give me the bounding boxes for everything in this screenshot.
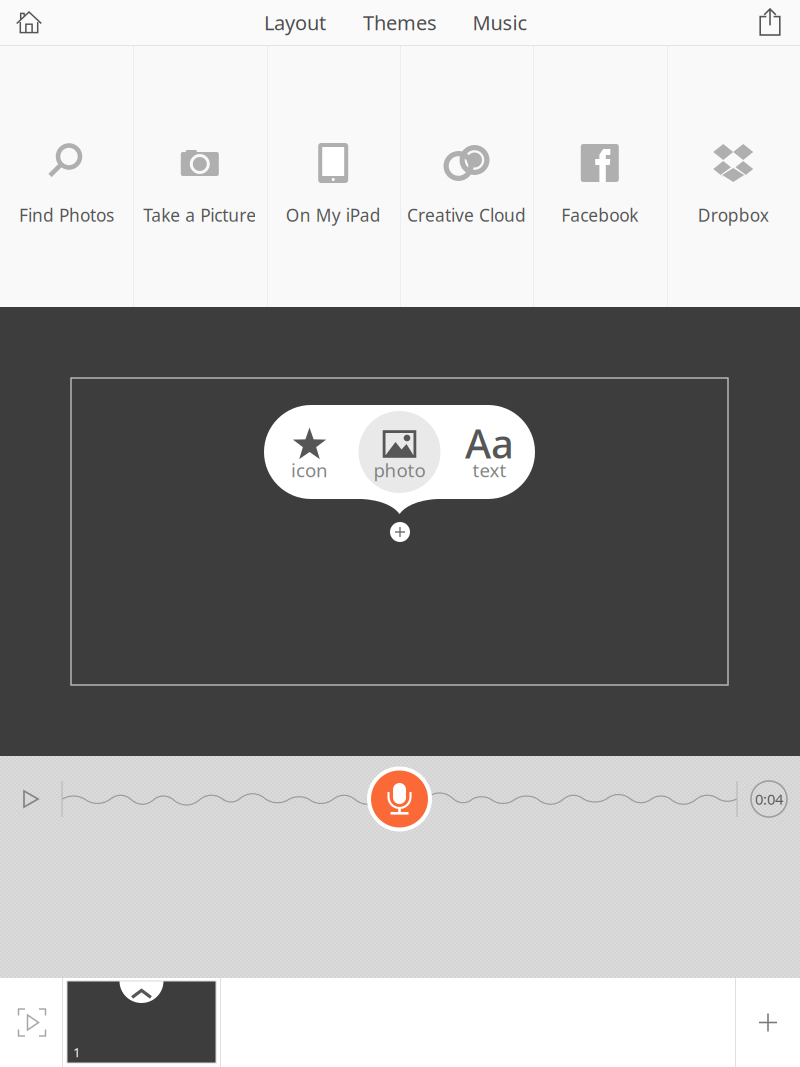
button[interactable]: Layout	[250, 0, 340, 45]
button[interactable]: Home	[1, 0, 57, 45]
staticText: Creative Cloud	[407, 203, 526, 226]
staticText: Themes	[363, 9, 437, 36]
button[interactable]: Music	[455, 0, 545, 45]
button[interactable]: Duration	[747, 777, 791, 821]
button[interactable]: Add scene	[736, 978, 800, 1067]
button[interactable]: Themes	[355, 0, 445, 45]
staticText: On My iPad	[286, 203, 381, 226]
button[interactable]: 1	[67, 981, 216, 1063]
staticText: Layout	[264, 9, 326, 36]
staticText: Aa	[465, 416, 514, 469]
button[interactable]: Dropbox	[667, 46, 800, 307]
staticText: Facebook	[561, 203, 638, 226]
staticText: 1	[73, 1043, 81, 1061]
staticText: Dropbox	[698, 203, 769, 226]
button[interactable]: Take a Picture	[133, 46, 266, 307]
button[interactable]: Aa	[444, 405, 534, 499]
button[interactable]: Find Photos	[0, 46, 133, 307]
button[interactable]: photo	[354, 405, 444, 499]
staticText: Music	[472, 9, 527, 36]
staticText: photo	[373, 458, 425, 482]
button[interactable]: Play	[8, 776, 54, 822]
button[interactable]: Expand scenes	[119, 983, 163, 1005]
button[interactable]: Facebook	[533, 46, 666, 307]
staticText: Take a Picture	[143, 203, 256, 226]
button[interactable]: Add element	[383, 515, 417, 549]
staticText: text	[472, 458, 506, 482]
staticText: 0:04	[755, 789, 783, 809]
button[interactable]: Record	[364, 764, 434, 834]
button[interactable]: Creative Cloud	[400, 46, 533, 307]
button[interactable]: On My iPad	[267, 46, 400, 307]
staticText: Find Photos	[19, 203, 114, 226]
button[interactable]: icon	[264, 405, 354, 499]
button[interactable]: Share	[742, 0, 798, 45]
button[interactable]: Preview	[0, 978, 65, 1067]
staticText: icon	[291, 458, 328, 482]
